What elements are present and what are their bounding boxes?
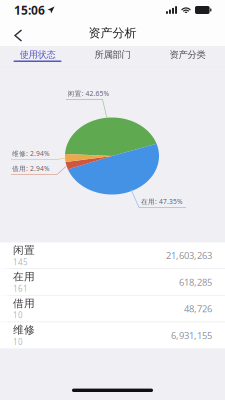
staticText: 21,603,263 (166, 249, 212, 262)
staticText: 维修 (13, 323, 35, 336)
button[interactable]: 维修 (0, 322, 225, 348)
staticText: 15:06 (14, 2, 45, 18)
button[interactable]: 资产分类 (150, 46, 225, 66)
staticText: 资产分析 (88, 26, 136, 40)
staticText: 借用: 2.94% (12, 164, 50, 173)
button[interactable]: 闲置 (0, 242, 225, 268)
staticText: 闲置: 42.65% (67, 89, 109, 98)
button[interactable]: 在用 (0, 269, 225, 295)
button[interactable]: 使用状态 (0, 46, 75, 66)
button[interactable]: Back (0, 20, 32, 46)
staticText: 10 (13, 336, 23, 347)
staticText: 618,285 (179, 276, 212, 288)
button[interactable]: 借用 (0, 296, 225, 322)
staticText: 161 (13, 283, 28, 294)
staticText: 在用 (13, 270, 35, 283)
staticText: 48,726 (184, 302, 212, 315)
staticText: 资产分类 (169, 49, 205, 60)
staticText: 6,931,155 (171, 329, 212, 341)
staticText: 所属部门 (94, 49, 130, 60)
staticText: 145 (13, 257, 28, 267)
staticText: 10 (13, 310, 23, 320)
staticText: 使用状态 (19, 49, 55, 60)
staticText: 借用 (13, 297, 35, 310)
staticText: 在用: 47.35% (141, 197, 183, 206)
button[interactable]: 所属部门 (75, 46, 150, 66)
staticText: 维修: 2.94% (12, 149, 50, 158)
staticText: 闲置 (13, 244, 35, 257)
